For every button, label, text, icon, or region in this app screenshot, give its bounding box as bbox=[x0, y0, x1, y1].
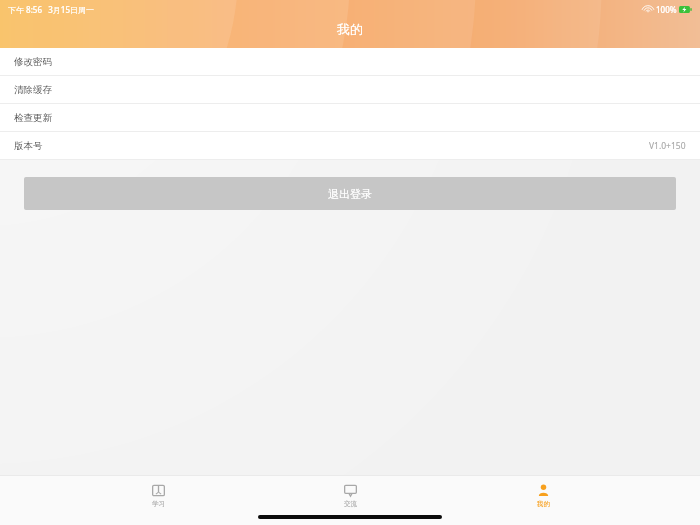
button[interactable]: 我的 bbox=[508, 480, 578, 510]
staticText: V1.0+150 bbox=[649, 140, 686, 152]
staticText: 清除缓存 bbox=[14, 84, 52, 96]
button[interactable]: 交流 bbox=[315, 480, 385, 510]
button[interactable]: 清除缓存 bbox=[0, 76, 700, 104]
staticText: 检查更新 bbox=[14, 112, 52, 124]
staticText: 退出登录 bbox=[328, 187, 372, 201]
other: 我的 bbox=[537, 484, 550, 497]
staticText: 我的 bbox=[337, 21, 363, 37]
button[interactable]: 退出登录 bbox=[24, 177, 676, 210]
staticText: 100% bbox=[656, 4, 677, 15]
button[interactable]: 学习 bbox=[123, 480, 193, 510]
staticText: 下午 8:56 3月15日周一 bbox=[8, 4, 94, 15]
staticText: 学习 bbox=[152, 500, 165, 508]
button[interactable]: 修改密码 bbox=[0, 48, 700, 76]
other: 交流 bbox=[344, 484, 357, 497]
button[interactable]: 版本号 bbox=[0, 132, 700, 160]
button[interactable]: 检查更新 bbox=[0, 104, 700, 132]
staticText: 我的 bbox=[537, 500, 550, 508]
staticText: 修改密码 bbox=[14, 56, 52, 68]
staticText: 交流 bbox=[344, 500, 357, 508]
staticText: 版本号 bbox=[14, 140, 43, 152]
other: 学习 bbox=[152, 484, 165, 497]
